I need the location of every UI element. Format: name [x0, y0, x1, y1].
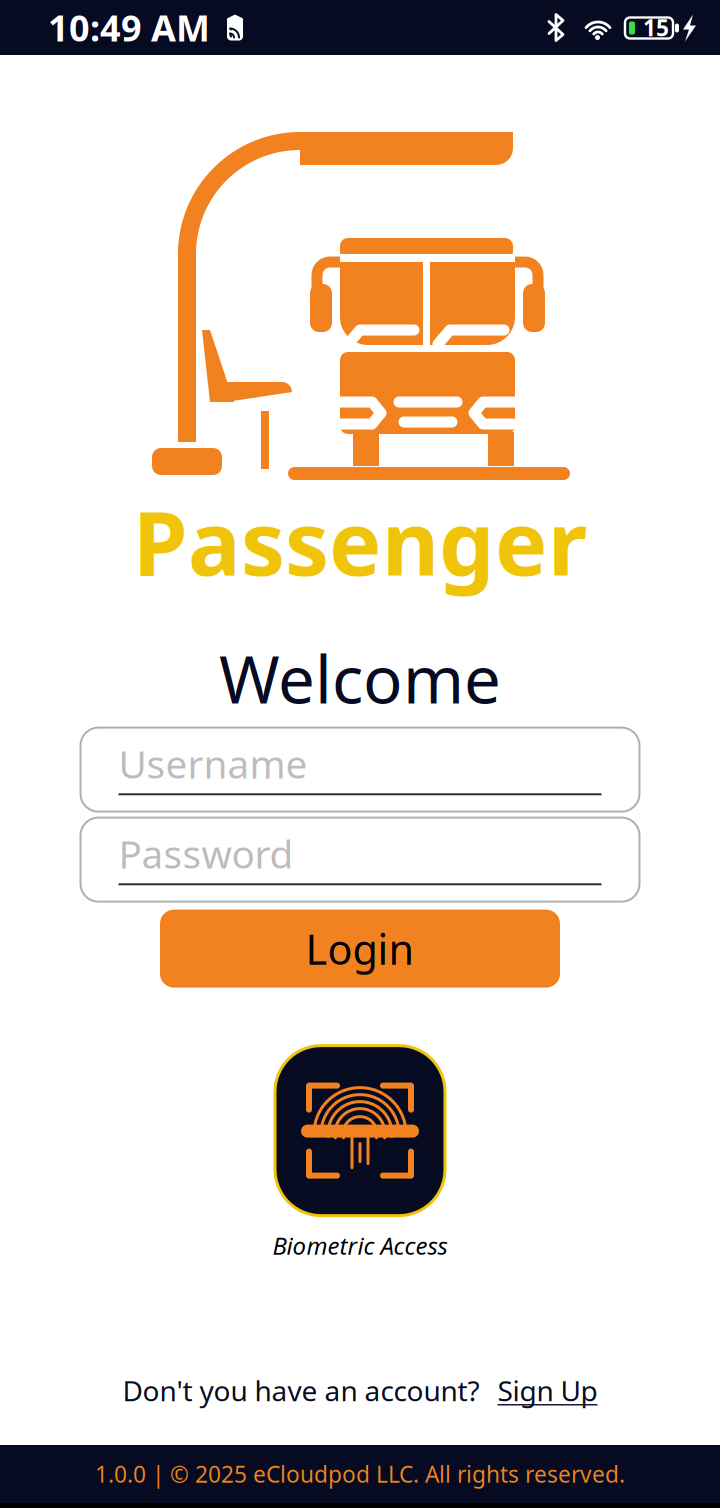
staticText: Login: [305, 921, 414, 976]
staticText: Don't you have an account?: [122, 1372, 479, 1409]
staticText: 10:49 AM: [48, 4, 210, 51]
staticText: Sign Up: [497, 1372, 597, 1409]
staticText: Passenger: [133, 483, 587, 600]
staticText: Welcome: [219, 635, 501, 722]
button[interactable]: Sign Up: [479, 1372, 597, 1409]
staticText: Biometric Access: [272, 1230, 447, 1261]
button[interactable]: Biometric Access: [275, 1046, 445, 1216]
staticText: Username: [118, 738, 307, 789]
staticText: 15: [643, 12, 669, 42]
button[interactable]: Login: [160, 910, 560, 988]
staticText: 1.0.0 | © 2025 eCloudpod LLC. All rights…: [95, 1459, 625, 1489]
staticText: Password: [118, 828, 293, 879]
